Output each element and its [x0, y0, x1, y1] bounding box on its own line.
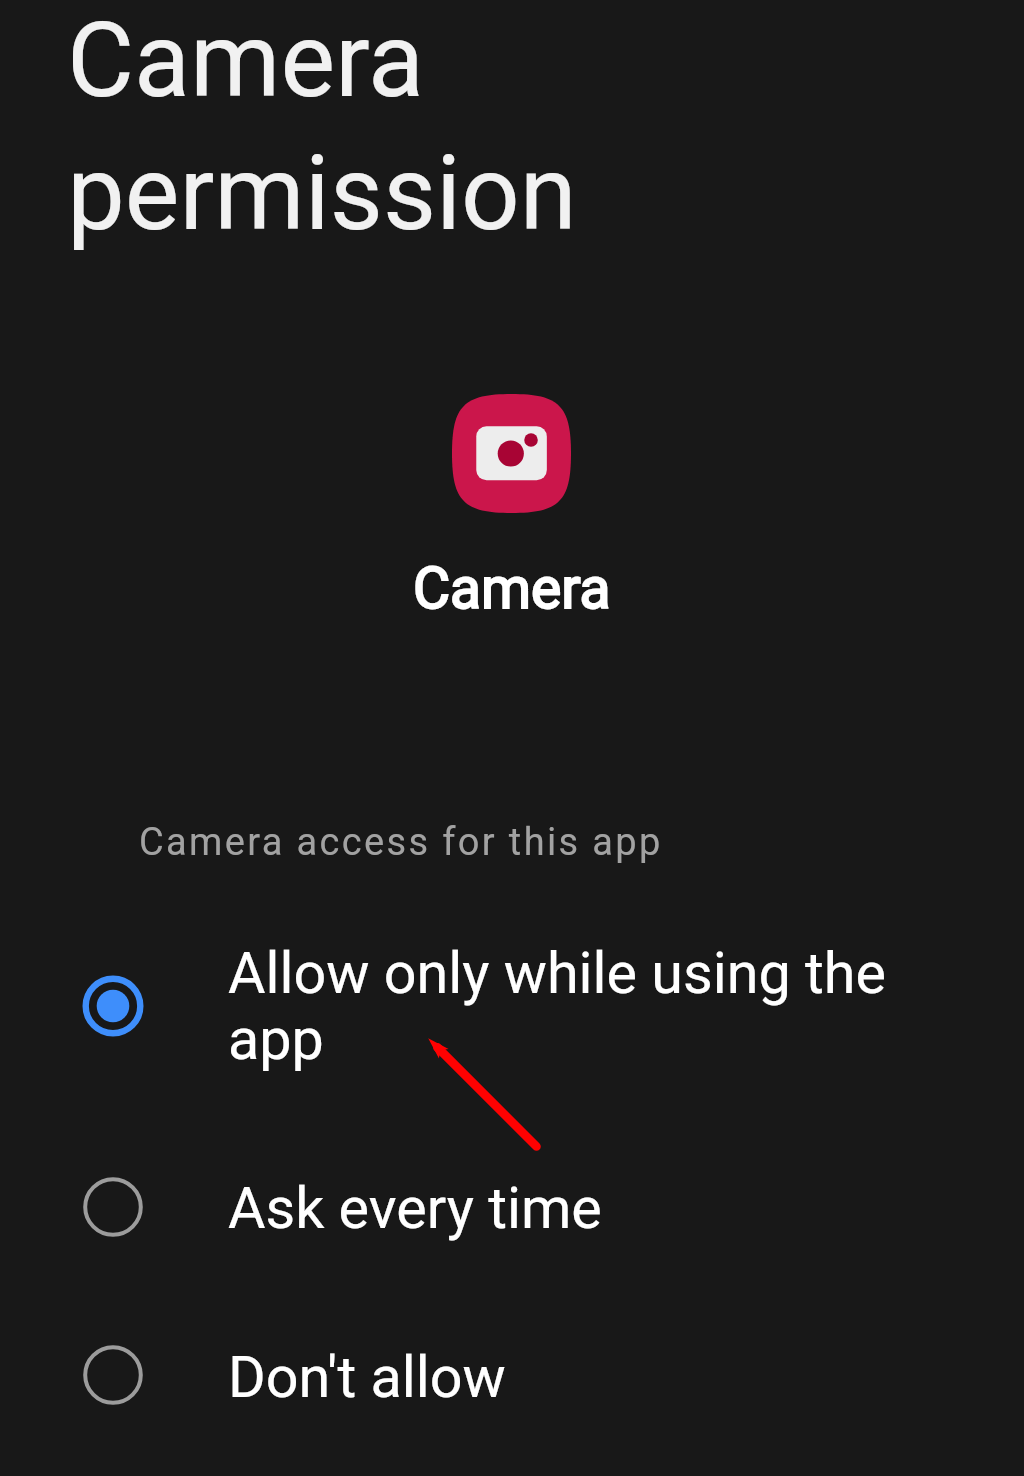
button[interactable]: Allow only while using the app [0, 945, 1024, 1135]
other: Camera app icon [452, 394, 571, 513]
staticText: Allow only while using the app [228, 940, 908, 1073]
staticText: Camera permission [67, 0, 637, 254]
staticText: Camera [413, 555, 611, 622]
staticText: Don't allow [228, 1344, 908, 1411]
button[interactable]: Ask every time [0, 1146, 1024, 1271]
button[interactable]: Don't allow [0, 1314, 1024, 1439]
staticText: Ask every time [228, 1175, 908, 1242]
staticText: Camera access for this app [139, 820, 663, 865]
